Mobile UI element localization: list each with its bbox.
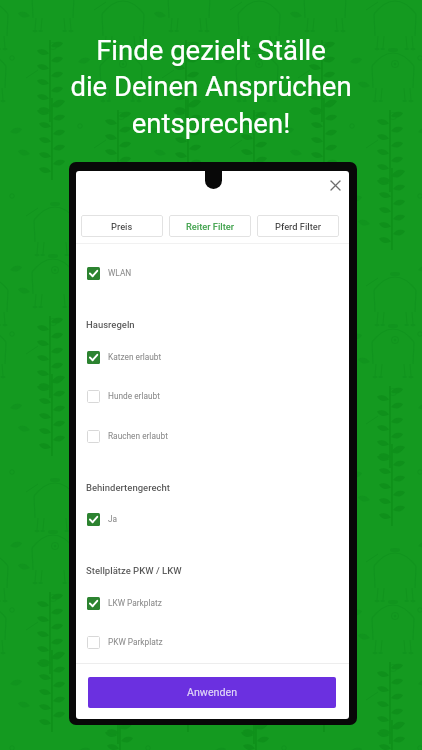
button[interactable]: Hunde erlaubt [87,385,337,407]
staticText: Hausregeln [86,319,135,330]
staticText: Hunde erlaubt [108,391,160,401]
staticText: Preis [111,221,133,232]
button[interactable]: PKW Parkplatz [87,631,337,653]
button[interactable]: Schließen [325,175,345,195]
staticText: Rauchen erlaubt [108,431,168,441]
button[interactable]: Reiter Filter [169,215,251,237]
button[interactable]: Rauchen erlaubt [87,425,337,447]
button[interactable]: Preis [81,215,163,237]
button[interactable]: Anwenden [88,677,336,708]
staticText: LKW Parkplatz [108,598,162,608]
button[interactable]: LKW Parkplatz [87,592,337,614]
button[interactable]: Katzen erlaubt [87,346,337,368]
staticText: Finde gezielt Ställe die Deinen Ansprüch… [70,34,352,140]
staticText: Anwenden [187,686,238,699]
staticText: Behindertengerecht [86,482,170,493]
staticText: PKW Parkplatz [108,637,163,647]
button[interactable]: WLAN [87,262,337,284]
staticText: Stellplätze PKW / LKW [86,565,182,576]
staticText: WLAN [108,268,132,278]
button[interactable]: Ja [87,508,337,530]
staticText: Reiter Filter [186,221,235,232]
staticText: Pferd Filter [275,221,322,232]
staticText: Katzen erlaubt [108,352,162,362]
staticText: Ja [108,514,118,524]
button[interactable]: Pferd Filter [257,215,339,237]
